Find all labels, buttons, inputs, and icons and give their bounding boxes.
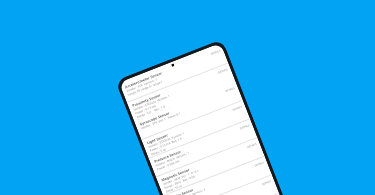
- button[interactable]: Step Counter: [178, 194, 287, 195]
- staticText: Vendor : STK Version : 1: [126, 77, 158, 93]
- button[interactable]: Accelerometer Sensor: [120, 45, 228, 103]
- staticText: Delay : 0 us: [151, 147, 167, 156]
- button[interactable]: Magnetic Sensor: [156, 138, 265, 195]
- button[interactable]: Details: [253, 159, 265, 168]
- staticText: Vendor : Google Version : 3: [170, 187, 206, 195]
- staticText: Gravity Sensor: [168, 187, 195, 195]
- staticText: range: 39 range-4 : range-1: [127, 80, 163, 97]
- staticText: Vendor : STK Ver: 1 Power 6.1: [140, 111, 181, 130]
- staticText: Vendor : AKM Ver : 1 P: 0.1: [162, 169, 199, 186]
- staticText: Delay : 10 us: [165, 183, 183, 194]
- staticText: DETAILS: [254, 160, 265, 168]
- button[interactable]: Details: [239, 122, 250, 130]
- staticText: Power : 0.004 mA: [156, 159, 180, 171]
- staticText: Delay : 0 us Max delay : 0: [138, 106, 171, 120]
- staticText: Pressure Sensor: [153, 149, 182, 164]
- button[interactable]: Details: [217, 66, 228, 75]
- button[interactable]: Details: [224, 85, 235, 93]
- staticText: DETAILS: [232, 104, 243, 112]
- staticText: Range : 5.0 Res : 1.0: [136, 104, 165, 119]
- button[interactable]: Details: [246, 141, 257, 149]
- staticText: DETAILS: [239, 123, 250, 130]
- staticText: Power : 0.13 mA Res: 1.0: [149, 137, 182, 153]
- staticText: Vendor : Bosch Version : 1: [155, 151, 190, 168]
- staticText: DETAILS: [247, 142, 257, 149]
- staticText: Magnetic Sensor: [160, 167, 190, 183]
- staticText: Light Sensor: [146, 132, 169, 145]
- staticText: Accelerometer Sensor: [124, 70, 163, 89]
- button[interactable]: Light Sensor: [141, 101, 250, 159]
- staticText: Gyroscope Sensor: [139, 110, 170, 127]
- staticText: DETAILS: [217, 67, 228, 75]
- button[interactable]: Proximity Sensor: [127, 63, 236, 121]
- button[interactable]: Gyroscope Sensor: [134, 82, 243, 140]
- button[interactable]: Details: [210, 48, 221, 56]
- button[interactable]: Pressure Sensor: [149, 119, 258, 177]
- staticText: DETAILS: [225, 86, 235, 93]
- staticText: Vendor : STK3x3x Version: 1: [133, 94, 171, 112]
- staticText: Vendor : STK3x3x Version: 1: [148, 131, 186, 149]
- staticText: DETAILS: [261, 179, 272, 186]
- staticText: Proximity Sensor: [131, 92, 162, 108]
- staticText: Range : 4912 Res : 0.06: [164, 174, 196, 190]
- button[interactable]: Details: [261, 178, 272, 186]
- button[interactable]: Rotation Vector: [171, 175, 279, 195]
- button[interactable]: Gravity Sensor: [163, 156, 272, 195]
- staticText: Power : 0.13 mA: [135, 104, 157, 115]
- staticText: DETAILS: [210, 49, 221, 56]
- button[interactable]: Details: [232, 103, 243, 112]
